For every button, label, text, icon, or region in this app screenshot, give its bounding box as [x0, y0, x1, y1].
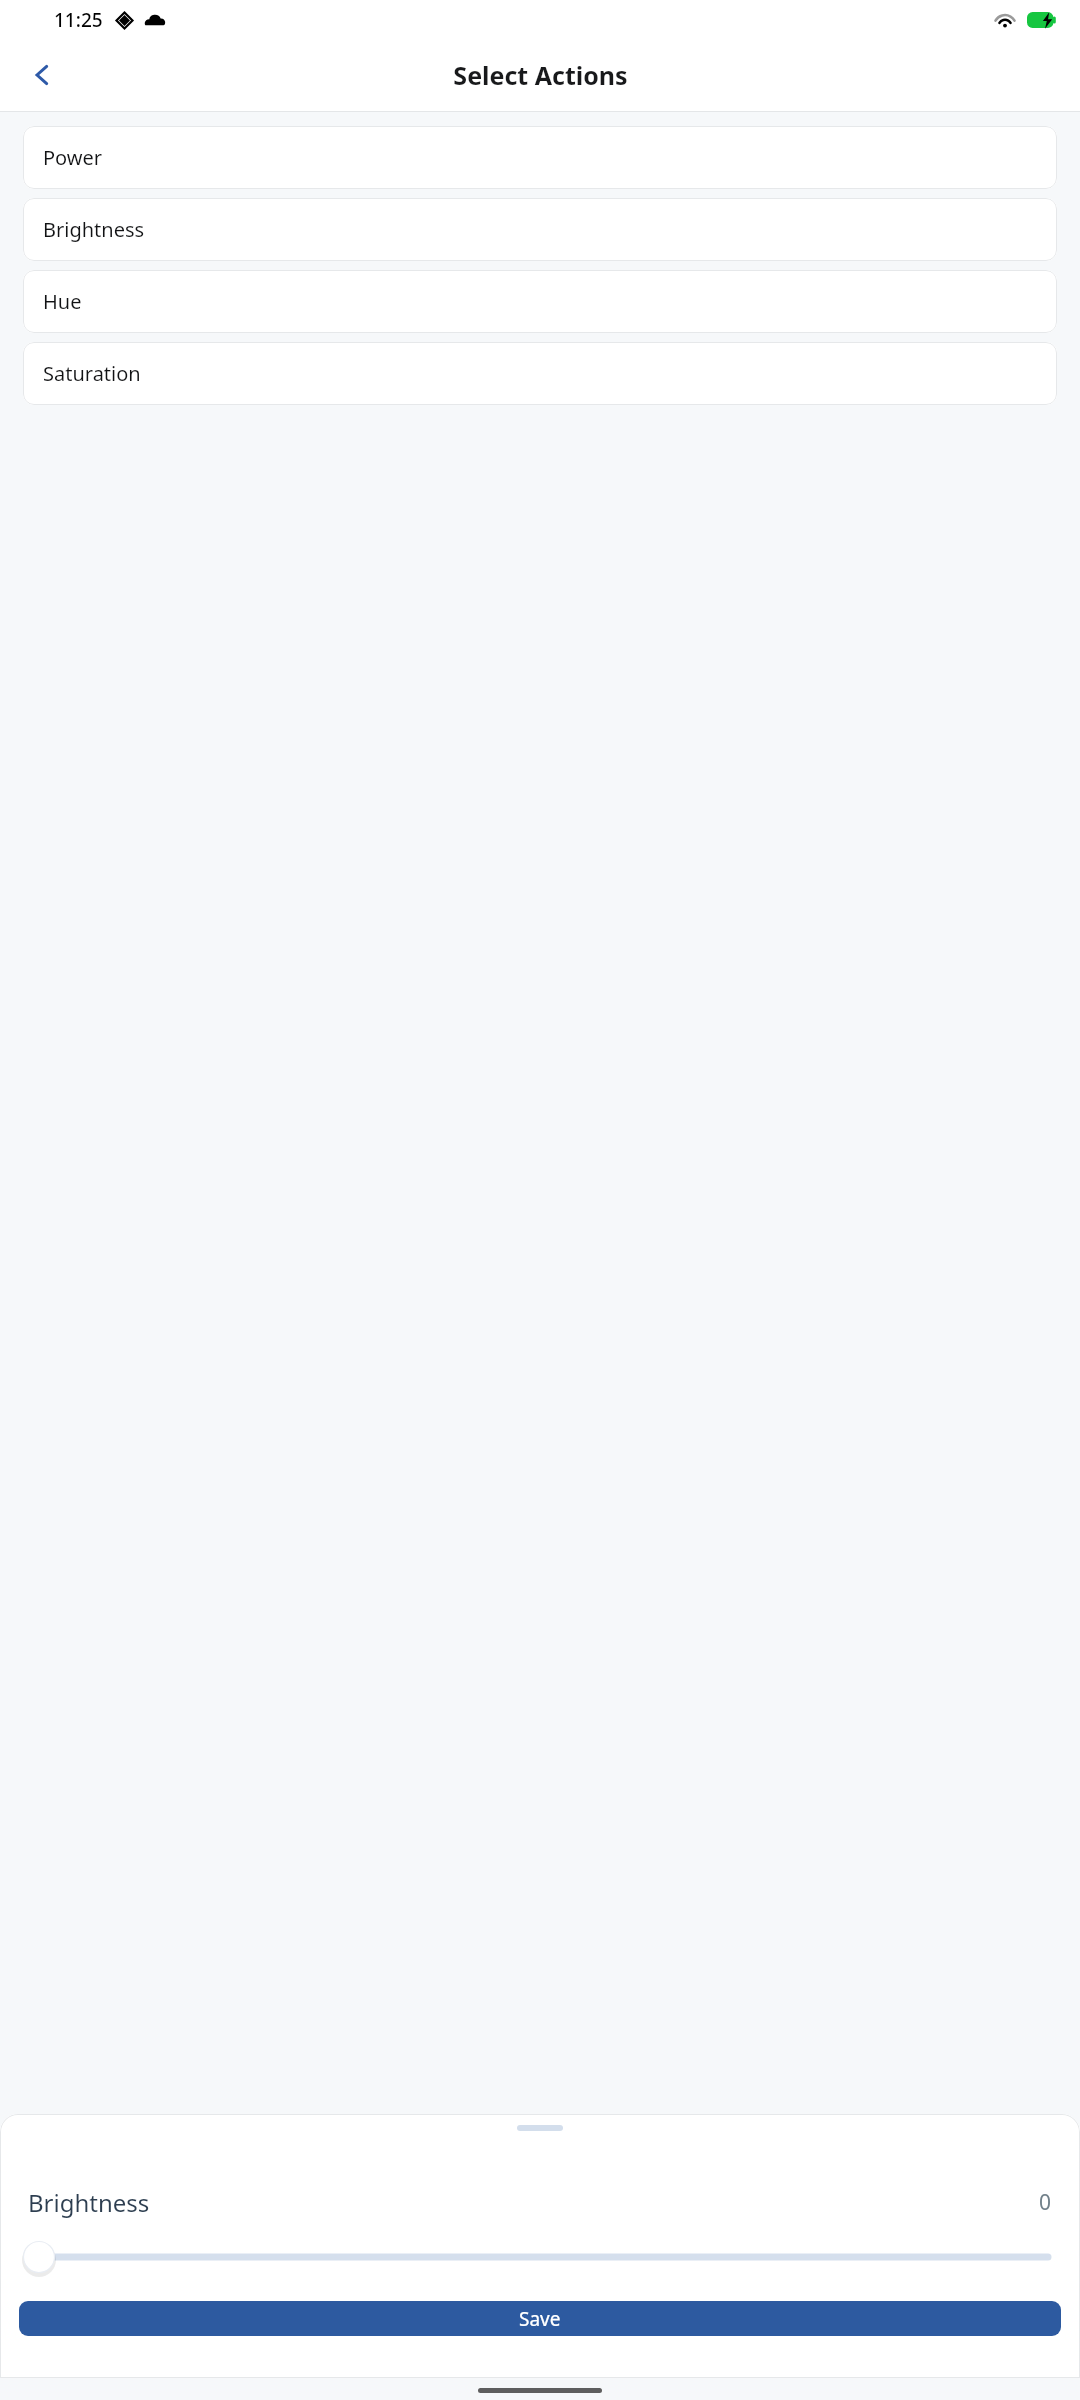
staticText: Saturation	[43, 360, 141, 387]
button[interactable]: Hue	[23, 270, 1057, 333]
staticText: 11:25	[54, 7, 103, 33]
button[interactable]	[24, 2237, 1056, 2277]
staticText: Save	[519, 2306, 561, 2332]
staticText: Brightness	[43, 216, 145, 243]
button[interactable]: Saturation	[23, 342, 1057, 405]
staticText: Select Actions	[453, 58, 628, 92]
staticText: 0	[1039, 2188, 1052, 2217]
button[interactable]: Power	[23, 126, 1057, 189]
button[interactable]: Brightness	[23, 198, 1057, 261]
staticText: Brightness	[28, 2186, 150, 2219]
button[interactable]: Back	[20, 53, 64, 97]
staticText: Hue	[43, 288, 82, 315]
button[interactable]: Save	[19, 2301, 1061, 2336]
staticText: Power	[43, 144, 103, 171]
